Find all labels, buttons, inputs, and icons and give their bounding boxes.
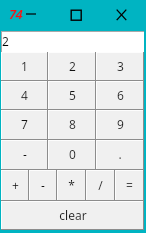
staticText: / [98,177,103,193]
button[interactable]: 2 [1,31,144,52]
staticText: 1 [21,58,28,74]
button[interactable]: Application icon [9,5,25,21]
staticText: - [41,177,45,193]
button[interactable]: / [86,170,115,201]
staticText: 0 [69,146,76,162]
staticText: - [23,146,27,162]
staticText: + [12,177,19,193]
button[interactable]: + [1,170,29,201]
staticText: 4 [21,87,28,103]
staticText: 7 [21,116,28,132]
button[interactable]: 9 [96,110,144,140]
staticText: 6 [117,87,124,103]
button[interactable]: Minimize [22,5,40,23]
staticText: = [126,177,133,193]
button[interactable]: - [1,140,48,170]
staticText: clear [59,207,87,223]
button[interactable]: 0 [48,140,96,170]
staticText: * [68,177,75,193]
button[interactable]: * [57,170,86,201]
button[interactable]: 3 [96,52,144,81]
button[interactable]: Maximize [67,6,85,24]
staticText: 8 [69,116,76,132]
staticText: 5 [69,87,76,103]
staticText: . [118,146,122,162]
button[interactable]: 8 [48,110,96,140]
button[interactable]: 6 [96,81,144,110]
button[interactable]: 5 [48,81,96,110]
staticText: 3 [117,58,124,74]
button[interactable]: = [115,170,144,201]
button[interactable]: Close [113,6,131,24]
staticText: 2 [2,33,9,49]
button[interactable]: clear [1,201,144,230]
button[interactable]: . [96,140,144,170]
button[interactable]: 7 [1,110,48,140]
button[interactable]: 4 [1,81,48,110]
button[interactable]: 2 [48,52,96,81]
staticText: 9 [117,116,124,132]
button[interactable]: - [29,170,57,201]
staticText: 74 [9,5,23,21]
button[interactable]: 1 [1,52,48,81]
staticText: 2 [69,58,76,74]
